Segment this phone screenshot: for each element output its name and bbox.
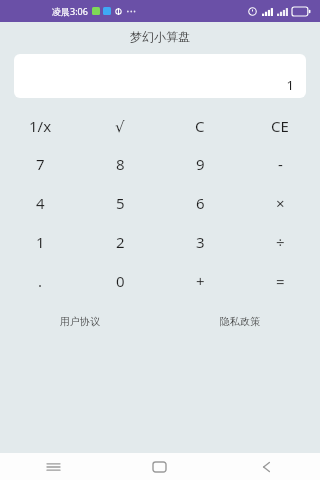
staticText: 5	[116, 193, 125, 213]
button[interactable]: CE	[240, 108, 320, 144]
button[interactable]: 6	[160, 183, 240, 222]
button[interactable]: +	[160, 261, 240, 300]
staticText: 0	[116, 271, 125, 291]
staticText: 1	[36, 232, 45, 252]
staticText: 隐私政策	[220, 315, 260, 328]
staticText: -	[278, 154, 283, 174]
button[interactable]: 0	[80, 261, 160, 300]
button[interactable]: ÷	[240, 222, 320, 261]
staticText: 7	[36, 154, 45, 174]
button[interactable]: 9	[160, 144, 240, 183]
staticText: 梦幻小算盘	[130, 29, 190, 44]
staticText: 凌晨3:06	[52, 5, 88, 17]
button[interactable]: Home	[106, 453, 213, 480]
staticText: =	[276, 271, 285, 291]
button[interactable]: 3	[160, 222, 240, 261]
button[interactable]: 8	[80, 144, 160, 183]
staticText: 用户协议	[60, 315, 100, 328]
button[interactable]: ×	[240, 183, 320, 222]
staticText: 2	[116, 232, 125, 252]
button[interactable]: 4	[0, 183, 80, 222]
button[interactable]: =	[240, 261, 320, 300]
staticText: √	[115, 118, 125, 135]
button[interactable]: 7	[0, 144, 80, 183]
button[interactable]: 隐私政策	[160, 308, 320, 334]
staticText: ×	[276, 193, 285, 213]
button[interactable]: 1/x	[0, 108, 80, 144]
button[interactable]: 1	[14, 54, 306, 98]
staticText: 1/x	[29, 116, 52, 136]
button[interactable]: √	[80, 108, 160, 144]
staticText: C	[195, 116, 205, 136]
staticText: .	[38, 271, 43, 291]
button[interactable]: 用户协议	[0, 308, 160, 334]
button[interactable]: Back	[213, 453, 320, 480]
button[interactable]: 1	[0, 222, 80, 261]
staticText: +	[196, 271, 205, 291]
staticText: 6	[196, 193, 205, 213]
staticText: 1	[286, 76, 294, 94]
staticText: 8	[116, 154, 125, 174]
button[interactable]: C	[160, 108, 240, 144]
button[interactable]: .	[0, 261, 80, 300]
button[interactable]: Recent apps	[0, 453, 106, 480]
staticText: ÷	[276, 232, 285, 252]
staticText: 3	[196, 232, 205, 252]
button[interactable]: -	[240, 144, 320, 183]
button[interactable]: 2	[80, 222, 160, 261]
staticText: 4	[36, 193, 45, 213]
button[interactable]: 5	[80, 183, 160, 222]
staticText: 9	[196, 154, 205, 174]
staticText: CE	[271, 116, 289, 136]
